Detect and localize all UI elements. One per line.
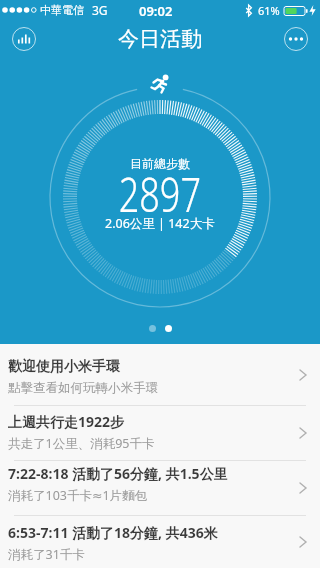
button[interactable]: 6:53-7:11 活動了18分鐘, 共436米 [0,516,320,568]
button[interactable]: 7:22-8:18 活動了56分鐘, 共1.5公里 [0,461,320,515]
staticText: 今日活動 [118,26,202,52]
staticText: 中華電信 [40,3,84,17]
staticText: 共走了1公里、消耗95千卡 [8,435,155,452]
button[interactable]: 歡迎使用小米手環 [0,344,320,405]
staticText: 目前總步數 [130,156,190,171]
staticText: 61% [258,3,280,18]
staticText: 09:02 [139,2,173,20]
staticText: 3G [92,2,108,18]
staticText: 6:53-7:11 活動了18分鐘, 共436米 [8,523,218,542]
staticText: 點擊查看如何玩轉小米手環 [8,380,158,396]
button[interactable]: 上週共行走1922步 [0,406,320,460]
staticText: 消耗了103千卡≈1片麵包 [8,487,148,504]
staticText: 2.06公里 | 142大卡 [105,215,215,232]
staticText: 7:22-8:18 活動了56分鐘, 共1.5公里 [8,464,228,483]
staticText: 2897 [119,161,201,226]
staticText: 上週共行走1922步 [8,412,125,431]
staticText: 歡迎使用小米手環 [8,358,120,376]
staticText: 消耗了31千卡 [8,546,85,563]
button[interactable] [12,27,36,51]
button[interactable] [284,27,308,51]
